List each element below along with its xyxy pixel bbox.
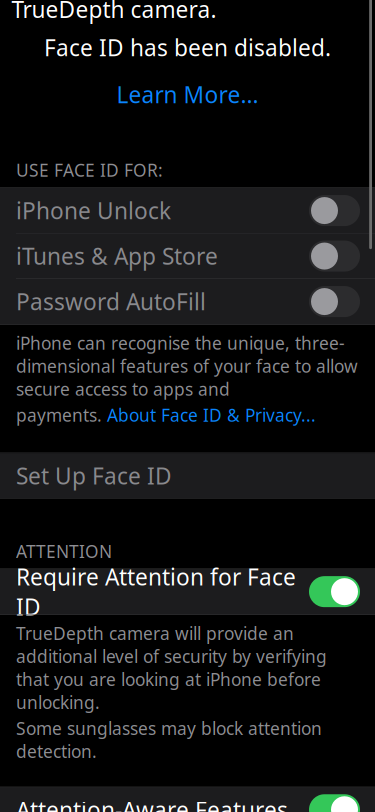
staticText: About Face ID & Privacy... bbox=[107, 404, 316, 427]
button[interactable]: Attention-Aware Features bbox=[0, 787, 375, 812]
button[interactable]: Set Up Face ID bbox=[0, 453, 375, 498]
staticText: iPhone Unlock bbox=[16, 195, 171, 226]
button[interactable]: Require Attention for Face ID bbox=[0, 569, 375, 614]
staticText: Some sunglasses may block attention dete… bbox=[16, 717, 322, 763]
button[interactable]: About Face ID & Privacy... bbox=[107, 404, 316, 427]
staticText: Learn More... bbox=[116, 79, 258, 110]
staticText: iPhone can recognise the unique, three-d… bbox=[16, 332, 358, 401]
staticText: iTunes & App Store bbox=[16, 241, 218, 271]
staticText: Password AutoFill bbox=[16, 286, 206, 317]
staticText: ATTENTION bbox=[16, 540, 112, 563]
button[interactable]: iTunes & App Store bbox=[0, 234, 375, 279]
staticText: TrueDepth camera will provide an additio… bbox=[16, 622, 327, 714]
staticText: Face ID has been disabled. bbox=[44, 32, 331, 62]
staticText: Require Attention for Face ID bbox=[16, 562, 296, 622]
staticText: USE FACE ID FOR: bbox=[16, 159, 163, 182]
button[interactable]: Learn More... bbox=[106, 76, 268, 113]
staticText: Set Up Face ID bbox=[16, 461, 172, 491]
staticText: payments. bbox=[16, 404, 107, 427]
staticText: A problem was detected with the TrueDept… bbox=[11, 0, 363, 24]
button[interactable]: Password AutoFill bbox=[0, 279, 375, 324]
staticText: Attention-Aware Features bbox=[16, 795, 288, 812]
button[interactable]: iPhone Unlock bbox=[0, 188, 375, 233]
